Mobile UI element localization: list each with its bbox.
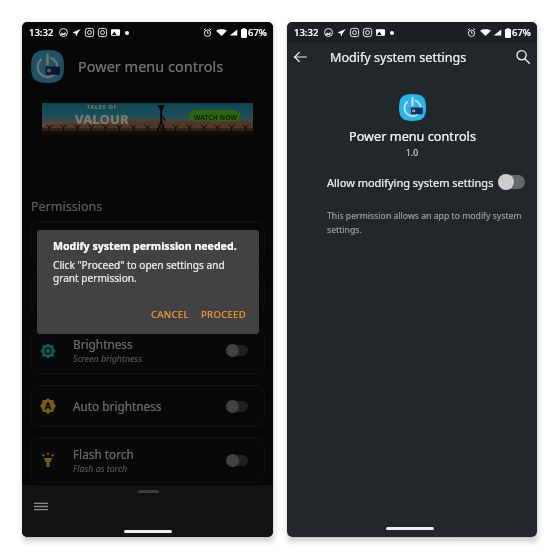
button[interactable]: Toggle	[498, 173, 525, 191]
button[interactable]	[30, 221, 265, 263]
button[interactable]: PROCEED	[199, 306, 248, 323]
staticText: This permission allows an app to modify …	[327, 210, 522, 235]
button[interactable]: Search	[510, 44, 536, 70]
button[interactable]: Menu	[27, 493, 54, 520]
button[interactable]: Back	[287, 44, 313, 70]
staticText: Power menu controls	[78, 56, 224, 76]
staticText: Permissions	[31, 198, 103, 215]
staticText: Screen brightness	[73, 353, 142, 365]
button[interactable]	[30, 273, 265, 315]
button[interactable]: Toggle	[226, 399, 248, 414]
staticText: CANCEL	[151, 308, 189, 321]
staticText: PROCEED	[201, 308, 246, 321]
button[interactable]: CANCEL	[149, 306, 191, 323]
staticText: Modify system settings	[330, 49, 467, 66]
staticText: Click "Proceed" to open settings and gra…	[53, 258, 225, 285]
button[interactable]: TALES OF	[42, 103, 253, 135]
staticText: 13:32	[294, 26, 319, 39]
staticText: Modify system permission needed.	[53, 239, 237, 253]
staticText: Power menu controls	[349, 127, 476, 144]
button[interactable]: Toggle	[226, 453, 248, 468]
staticText: 67%	[512, 26, 531, 39]
staticText: Flash torch	[73, 446, 134, 462]
staticText: 13:32	[29, 26, 54, 39]
staticText: 67%	[248, 26, 267, 39]
staticText: Brightness	[73, 336, 133, 352]
button[interactable]: Auto brightness	[30, 385, 265, 427]
button[interactable]: Brightness	[30, 327, 265, 374]
button[interactable]: Flash torch	[30, 437, 265, 483]
staticText: Auto brightness	[73, 398, 162, 414]
button[interactable]: Toggle	[226, 343, 248, 358]
staticText: Allow modifying system settings	[327, 175, 494, 190]
staticText: Flash as torch	[73, 463, 128, 475]
staticText: TALES OF	[87, 103, 118, 110]
staticText: WATCH NOW	[194, 113, 237, 122]
staticText: 1.0	[406, 147, 419, 159]
staticText: VALOUR	[75, 110, 129, 128]
